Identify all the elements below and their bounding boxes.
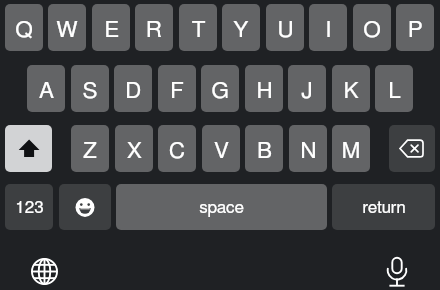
staticText: X	[127, 140, 142, 163]
staticText: J	[301, 80, 313, 103]
button[interactable]: 123	[5, 184, 53, 230]
button[interactable]: Q	[5, 4, 43, 51]
button[interactable]: Voice input	[376, 252, 417, 290]
staticText: L	[388, 80, 401, 103]
button[interactable]: V	[202, 125, 240, 172]
staticText: space	[199, 199, 244, 216]
staticText: Y	[233, 19, 249, 42]
button[interactable]: H	[245, 65, 283, 112]
staticText: D	[125, 80, 141, 103]
button[interactable]: K	[332, 65, 370, 112]
button[interactable]: R	[135, 4, 173, 51]
staticText: E	[104, 19, 119, 42]
button[interactable]: Z	[71, 125, 109, 172]
staticText: I	[325, 19, 332, 42]
button[interactable]: space	[116, 184, 327, 230]
staticText: P	[408, 19, 423, 42]
button[interactable]: E	[92, 4, 130, 51]
staticText: W	[56, 19, 78, 42]
staticText: H	[256, 80, 273, 103]
button[interactable]: Emoji keyboard	[59, 184, 111, 230]
button[interactable]: N	[289, 125, 327, 172]
button[interactable]: G	[201, 65, 239, 112]
staticText: return	[362, 199, 406, 216]
staticText: B	[257, 140, 272, 163]
button[interactable]: T	[179, 4, 217, 51]
staticText: M	[341, 140, 361, 163]
button[interactable]: Shift	[5, 125, 52, 172]
staticText: 123	[15, 199, 44, 216]
button[interactable]: return	[332, 184, 435, 230]
staticText: C	[169, 140, 185, 163]
button[interactable]: Y	[222, 4, 260, 51]
staticText: S	[82, 80, 98, 103]
button[interactable]: C	[158, 125, 196, 172]
button[interactable]: D	[114, 65, 152, 112]
button[interactable]: S	[71, 65, 109, 112]
staticText: Z	[83, 140, 97, 163]
staticText: N	[300, 140, 317, 163]
staticText: T	[191, 19, 206, 42]
staticText: G	[211, 80, 229, 103]
staticText: F	[170, 80, 184, 103]
staticText: O	[363, 19, 381, 42]
button[interactable]: M	[332, 125, 370, 172]
button[interactable]: W	[48, 4, 86, 51]
button[interactable]: I	[309, 4, 347, 51]
staticText: R	[146, 19, 162, 42]
button[interactable]: B	[245, 125, 283, 172]
staticText: A	[39, 80, 54, 103]
button[interactable]: F	[158, 65, 196, 112]
staticText: V	[214, 140, 229, 163]
button[interactable]: A	[27, 65, 65, 112]
button[interactable]: U	[266, 4, 304, 51]
staticText: K	[343, 80, 359, 103]
button[interactable]: X	[115, 125, 153, 172]
staticText: Q	[15, 19, 33, 42]
button[interactable]: Delete	[389, 125, 435, 172]
button[interactable]: J	[288, 65, 326, 112]
button[interactable]: O	[353, 4, 391, 51]
staticText: U	[277, 19, 294, 42]
button[interactable]: L	[375, 65, 413, 112]
button[interactable]: P	[396, 4, 434, 51]
button[interactable]: Change keyboard language	[24, 252, 64, 290]
